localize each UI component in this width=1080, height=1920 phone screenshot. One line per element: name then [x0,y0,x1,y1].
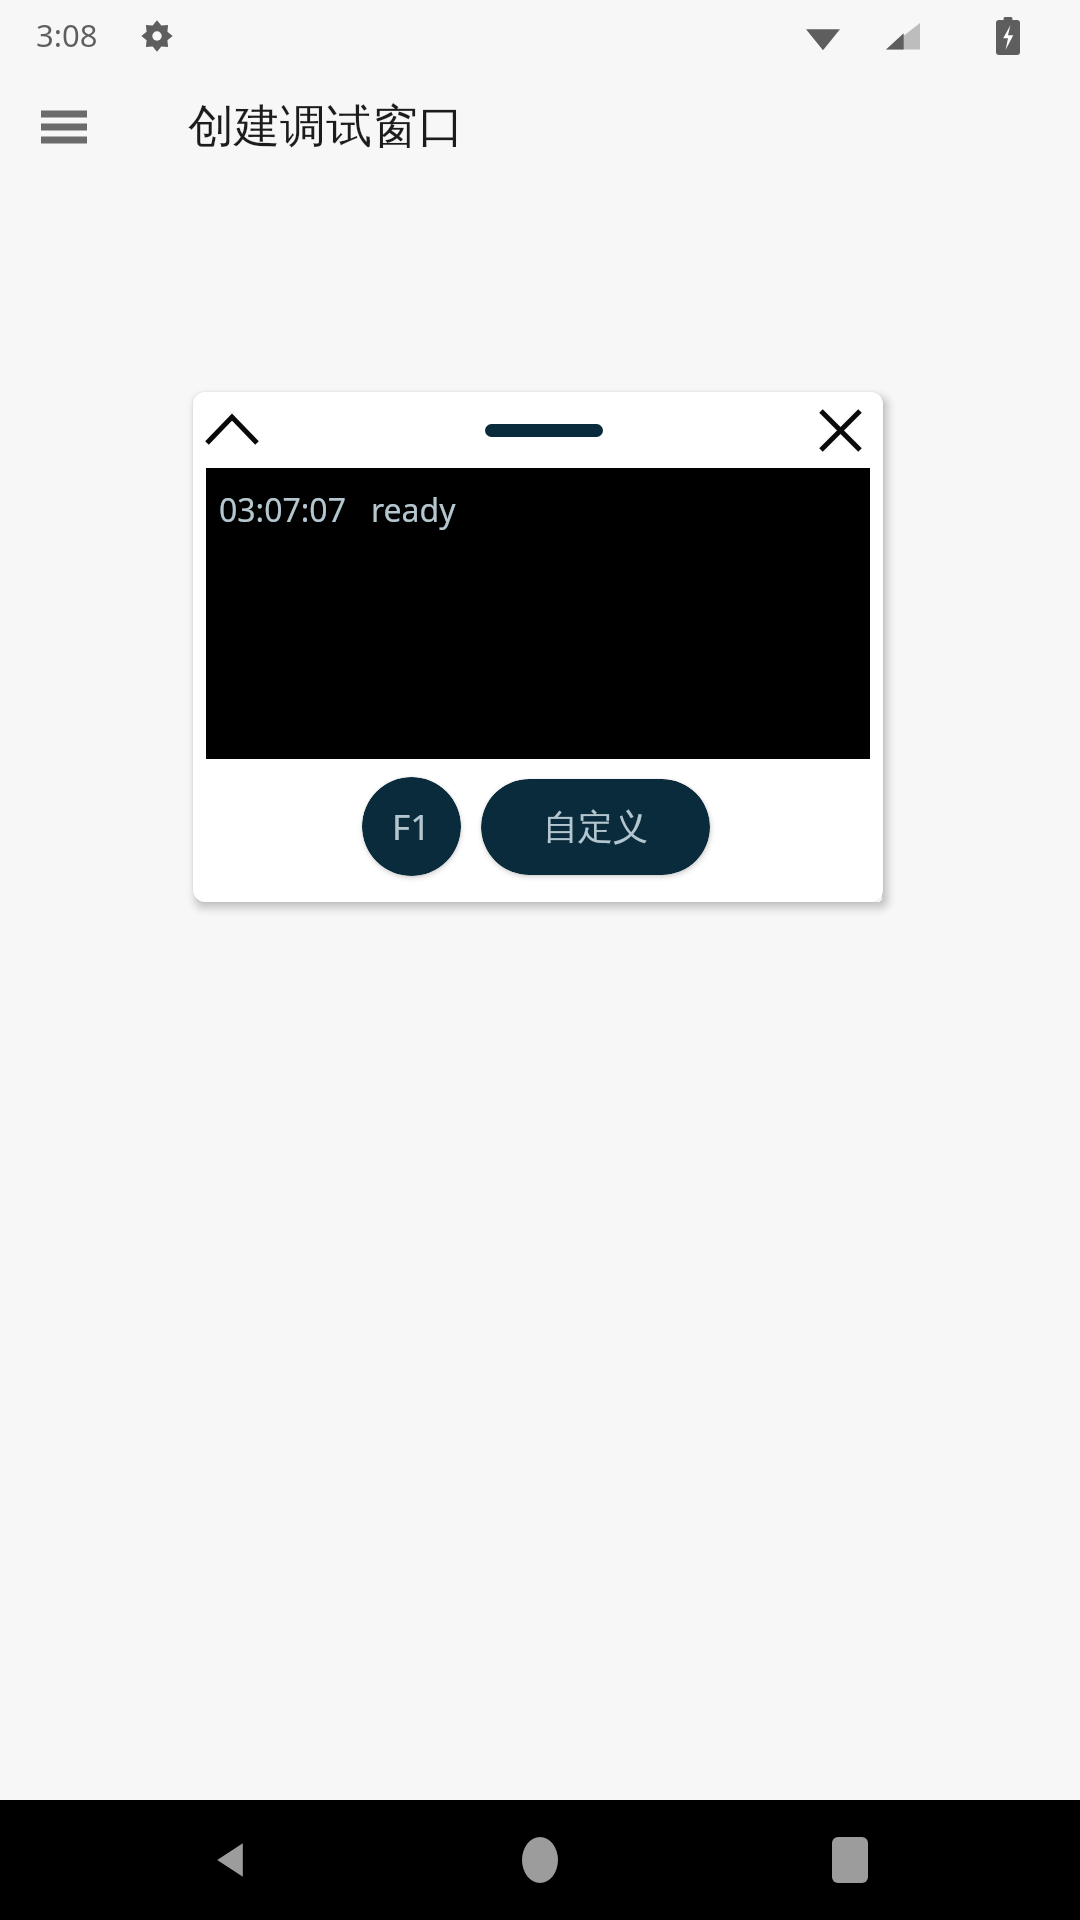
staticText: 创建调试窗口 [188,98,464,156]
button[interactable]: 自定义 [481,779,710,875]
button[interactable]: Back [180,1810,280,1910]
button[interactable]: Resize handle [485,424,603,437]
button[interactable]: Collapse [199,397,265,463]
staticText: 自定义 [543,805,648,849]
button[interactable]: Recents [800,1810,900,1910]
button[interactable]: Close [807,397,873,463]
staticText: F1 [392,803,431,851]
button[interactable]: F1 [362,777,461,876]
button[interactable]: Menu [28,91,100,163]
button[interactable]: Home [490,1810,590,1910]
staticText: 03:07:07 ready [219,488,456,532]
button[interactable]: 03:07:07 ready [206,468,870,759]
staticText: 3:08 [36,14,98,56]
